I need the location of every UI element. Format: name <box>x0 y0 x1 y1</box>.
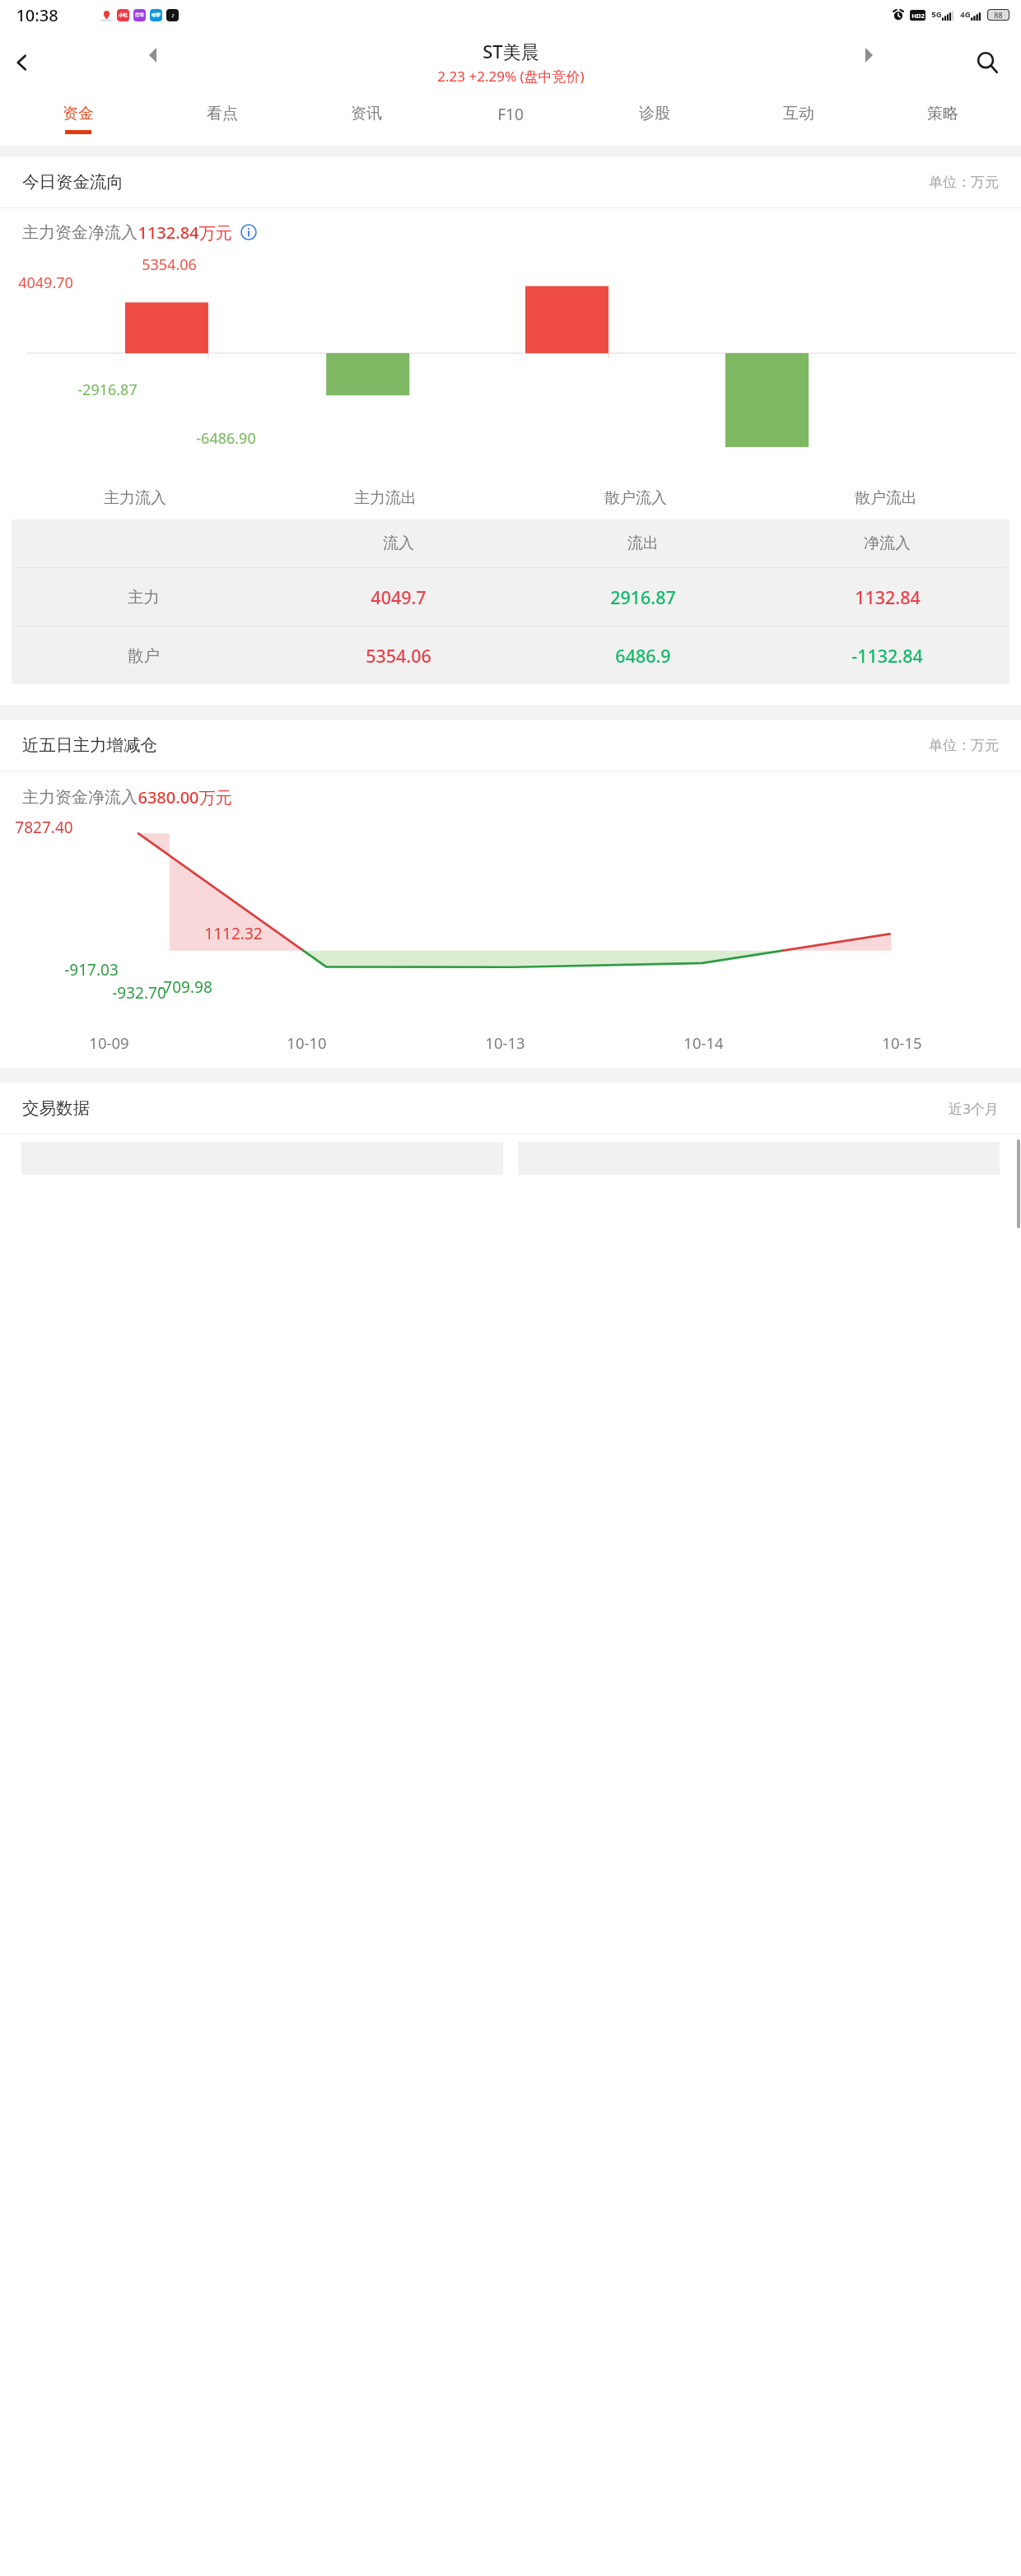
staticText: 5354.06 <box>366 644 431 668</box>
staticText: 4049.7 <box>371 585 427 609</box>
staticText: ♪ <box>171 13 175 18</box>
staticText: ST美晨 <box>483 39 539 63</box>
staticText: 资金 <box>63 104 94 123</box>
staticText: 流入 <box>383 533 414 553</box>
staticText: -709.98 <box>158 976 212 998</box>
staticText: 10-13 <box>485 1032 525 1053</box>
staticText: 今日资金流向 <box>22 171 124 193</box>
staticText: 单位：万元 <box>929 174 999 191</box>
button[interactable]: 看点 <box>150 95 294 146</box>
staticText: 1112.32 <box>204 923 263 944</box>
staticText: 主力 <box>128 587 160 608</box>
staticText: 5354.06 <box>142 254 197 275</box>
staticText: 打车 <box>135 12 144 18</box>
staticText: 7827.40 <box>15 817 73 838</box>
staticText: 主力流入 <box>104 488 166 508</box>
staticText: 10:38 <box>16 4 58 26</box>
staticText: 6380.00万元 <box>138 786 232 808</box>
staticText: 交易数据 <box>22 1097 90 1119</box>
button[interactable]: 下一只 <box>856 43 881 68</box>
staticText: 散户流入 <box>604 488 667 508</box>
staticText: 单位：万元 <box>929 737 999 754</box>
button[interactable]: 互动 <box>726 95 870 146</box>
staticText: 看点 <box>207 104 238 123</box>
staticText: 散户流出 <box>855 488 917 508</box>
staticText: 6486.9 <box>615 644 671 668</box>
staticText: 主力流出 <box>354 488 417 508</box>
staticText: 5G <box>931 9 942 20</box>
button[interactable]: 上一只 <box>140 43 165 68</box>
button[interactable]: 诊股 <box>582 95 726 146</box>
staticText: 88 <box>994 10 1003 20</box>
button[interactable]: 主力 <box>12 568 1009 626</box>
staticText: 4049.70 <box>18 273 73 293</box>
staticText: 主力资金净流入 <box>22 222 138 243</box>
button[interactable]: 散户 <box>12 627 1009 684</box>
button[interactable]: 返回 <box>0 40 44 85</box>
button[interactable]: 资金 <box>7 95 150 146</box>
staticText: 流出 <box>627 533 659 553</box>
staticText: 1132.84万元 <box>138 221 232 244</box>
staticText: 10-15 <box>882 1032 922 1053</box>
staticText: 10-09 <box>89 1032 129 1053</box>
staticText: 近五日主力增减仓 <box>22 734 157 756</box>
staticText: 策略 <box>927 104 958 123</box>
staticText: F10 <box>497 104 524 125</box>
staticText: 散户 <box>128 645 160 666</box>
staticText: 诊股 <box>639 104 670 123</box>
staticText: 10-10 <box>287 1032 327 1053</box>
staticText: 互动 <box>783 104 814 123</box>
staticText: 哈啰 <box>152 12 161 18</box>
staticText: -917.03 <box>64 959 119 981</box>
staticText: -6486.90 <box>196 428 256 449</box>
staticText: 净流入 <box>864 533 911 553</box>
staticText: 2.23 +2.29% (盘中竞价) <box>437 67 585 86</box>
button[interactable]: 说明 <box>239 222 259 242</box>
staticText: 2916.87 <box>610 585 676 609</box>
staticText: 近3个月 <box>949 1099 999 1118</box>
button[interactable]: F10 <box>438 95 582 146</box>
staticText: 主力资金净流入 <box>22 787 138 808</box>
staticText: 10-14 <box>683 1032 724 1053</box>
button[interactable]: 搜索 <box>965 40 1009 85</box>
staticText: -932.70 <box>112 982 166 1004</box>
staticText: 4G <box>960 9 971 20</box>
staticText: -1132.84 <box>851 644 923 668</box>
staticText: 资讯 <box>351 104 382 123</box>
staticText: -2916.87 <box>77 380 138 400</box>
staticText: 小红 <box>119 12 128 18</box>
button[interactable]: 策略 <box>870 95 1014 146</box>
staticText: 1132.84 <box>855 585 921 609</box>
button[interactable]: 资讯 <box>294 95 438 146</box>
staticText: HD2 <box>911 12 925 20</box>
